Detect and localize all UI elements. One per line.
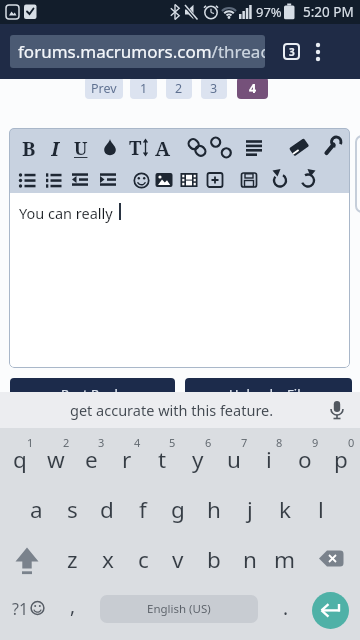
button[interactable]: h	[197, 487, 231, 531]
button[interactable]: B	[16, 135, 42, 161]
staticText: 97%	[256, 3, 282, 21]
button[interactable]: v	[161, 537, 195, 581]
staticText: a	[30, 494, 43, 525]
staticText: U	[74, 136, 88, 161]
staticText: p	[334, 444, 348, 475]
button[interactable]: u	[217, 437, 251, 481]
button[interactable]: w	[39, 437, 73, 481]
button[interactable]: .	[271, 590, 301, 626]
staticText: g	[171, 494, 185, 525]
button[interactable]: x	[91, 537, 125, 581]
button[interactable]: forums.macrumors.com/threac	[10, 35, 265, 68]
button[interactable]: 3	[201, 77, 227, 99]
button[interactable]: 2	[166, 77, 192, 99]
button[interactable]: o	[288, 437, 322, 481]
button[interactable]: c	[126, 537, 160, 581]
staticText: x	[102, 544, 114, 575]
staticText: I	[51, 135, 60, 161]
staticText: m	[274, 544, 296, 575]
staticText: l	[318, 494, 324, 525]
button[interactable]: s	[55, 487, 89, 531]
staticText: v	[172, 544, 184, 575]
button[interactable]: n	[233, 537, 267, 581]
button[interactable]: Upload a File	[185, 378, 352, 410]
staticText: j	[247, 494, 253, 525]
button[interactable]: p	[324, 437, 358, 481]
staticText: r	[122, 444, 132, 475]
button[interactable]: ,	[58, 588, 88, 624]
button[interactable]: Post Reply	[10, 378, 175, 410]
staticText: Post Reply	[61, 385, 125, 403]
staticText: 4	[134, 435, 141, 449]
button[interactable]: m	[268, 537, 302, 581]
button[interactable]: j	[233, 487, 267, 531]
staticText: You can really	[19, 203, 113, 223]
button[interactable]: A	[150, 135, 176, 161]
staticText: 1	[140, 80, 148, 97]
button[interactable]: 1	[130, 77, 157, 99]
button[interactable]: d	[90, 487, 124, 531]
staticText: get accurate with this feature.	[70, 400, 274, 420]
staticText: Prev	[91, 80, 117, 97]
staticText: English (US)	[147, 601, 211, 617]
button[interactable]: f	[126, 487, 160, 531]
staticText: k	[279, 494, 292, 525]
button[interactable]: e	[74, 437, 108, 481]
button[interactable]: y	[181, 437, 215, 481]
staticText: y	[192, 444, 204, 475]
button[interactable]: l	[304, 487, 338, 531]
button[interactable]: U	[68, 135, 94, 161]
button[interactable]: r	[110, 437, 144, 481]
button[interactable]: get accurate with this feature.	[32, 397, 312, 423]
staticText: 4	[249, 80, 257, 97]
staticText: t	[158, 444, 167, 475]
button[interactable]: ?1	[4, 590, 50, 628]
button[interactable]: b	[197, 537, 231, 581]
staticText: ?1	[12, 598, 29, 620]
staticText: c	[138, 544, 149, 575]
button[interactable]	[312, 592, 349, 629]
staticText: Upload a File	[229, 385, 308, 403]
staticText: 3	[98, 435, 105, 449]
button[interactable]	[306, 36, 330, 68]
button[interactable]	[311, 540, 351, 580]
staticText: e	[85, 444, 98, 475]
staticText: .	[283, 595, 289, 621]
button[interactable]	[7, 540, 47, 580]
staticText: 5	[169, 435, 176, 449]
staticText: 0	[348, 435, 355, 449]
button[interactable]: Prev	[85, 77, 123, 99]
staticText: 6	[205, 435, 212, 449]
staticText: i	[266, 444, 272, 475]
staticText: h	[207, 494, 221, 525]
button[interactable]: 4	[237, 77, 268, 99]
staticText: 8	[276, 435, 283, 449]
staticText: T	[129, 135, 142, 161]
staticText: 1	[27, 435, 34, 449]
staticText: s	[67, 494, 78, 525]
button[interactable]: t	[145, 437, 179, 481]
staticText: q	[13, 444, 27, 475]
button[interactable]: English (US)	[100, 595, 258, 623]
button[interactable]: k	[268, 487, 302, 531]
button[interactable]: a	[19, 487, 53, 531]
staticText: 3	[289, 45, 295, 59]
staticText: 9	[312, 435, 319, 449]
staticText: n	[243, 544, 257, 575]
staticText: ,	[70, 593, 76, 619]
staticText: 2	[63, 435, 70, 449]
staticText: forums.macrumors.com/threac	[18, 40, 265, 63]
staticText: f	[139, 494, 147, 525]
button[interactable]: g	[161, 487, 195, 531]
button[interactable]: 3	[283, 43, 300, 60]
button[interactable]: i	[252, 437, 286, 481]
staticText: u	[227, 444, 241, 475]
button[interactable]: q	[3, 437, 37, 481]
staticText: A	[155, 135, 171, 161]
button[interactable]: z	[55, 537, 89, 581]
staticText: d	[100, 494, 114, 525]
button[interactable]: I	[42, 135, 68, 161]
button[interactable]: T	[122, 135, 148, 161]
staticText: 3	[210, 80, 218, 97]
staticText: o	[298, 444, 312, 475]
